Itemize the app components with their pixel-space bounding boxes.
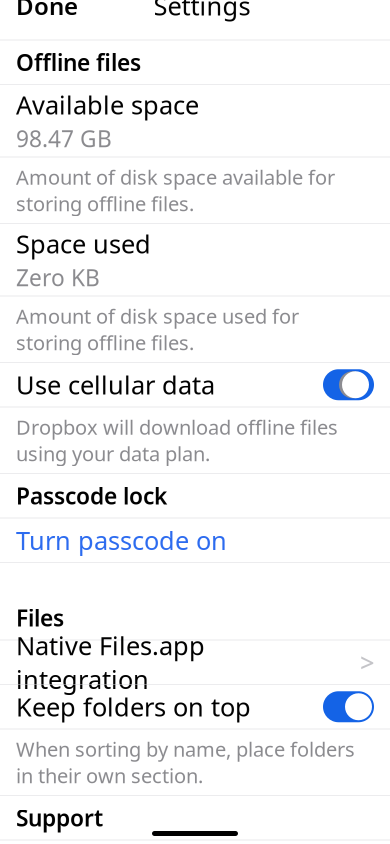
button[interactable]: Native Files.app integration: [0, 640, 390, 685]
staticText: Amount of disk space available for stori…: [16, 164, 335, 217]
staticText: Offline files: [16, 47, 141, 77]
staticText: Use cellular data: [16, 368, 215, 401]
staticText: Space used: [16, 227, 151, 260]
staticText: Native Files.app integration: [16, 629, 205, 696]
button[interactable]: Turn passcode on: [0, 518, 390, 563]
button[interactable]: Get help: [0, 840, 390, 844]
staticText: Settings: [153, 0, 250, 22]
button[interactable]: Done: [16, 0, 96, 30]
staticText: Files: [16, 603, 64, 633]
button[interactable]: Use cellular data: [0, 363, 390, 407]
staticText: Available space: [16, 88, 199, 121]
staticText: Passcode lock: [16, 481, 167, 511]
staticText: When sorting by name, place folders in t…: [16, 736, 355, 789]
staticText: Done: [16, 0, 78, 22]
staticText: Zero KB: [16, 262, 100, 293]
staticText: Amount of disk space used for storing of…: [16, 303, 299, 356]
staticText: Keep folders on top: [16, 690, 251, 723]
staticText: Dropbox will download offline files usin…: [16, 414, 338, 467]
staticText: Turn passcode on: [16, 523, 227, 557]
staticText: >: [360, 645, 374, 679]
button[interactable]: Keep folders on top: [0, 685, 390, 729]
staticText: Support: [16, 803, 103, 833]
staticText: 98.47 GB: [16, 123, 112, 154]
